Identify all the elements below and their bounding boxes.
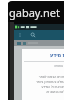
button[interactable]: More options: [14, 30, 26, 40]
button[interactable]: Search: [26, 30, 40, 40]
staticText: כאן תמצאו את כל המידע: [22, 85, 64, 89]
staticText: gabay.net: [9, 5, 60, 20]
staticText: פרטים נוספים: [22, 64, 64, 68]
staticText: מרכז מידע: [22, 52, 64, 59]
staticText: שלום וברוכים הבאים לאתר: [22, 75, 64, 79]
button[interactable]: מרכז מידע: [22, 49, 64, 100]
staticText: הנדרש לכם בנושא זה: [22, 90, 64, 94]
staticText: המידע המלא והמעודכן ביותר: [22, 80, 64, 84]
